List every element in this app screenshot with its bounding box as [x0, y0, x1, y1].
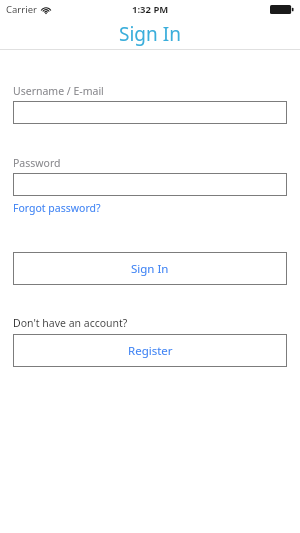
staticText: 1:32 PM — [132, 3, 169, 16]
staticText: Don't have an account? — [13, 316, 128, 330]
button[interactable]: Forgot password? — [13, 201, 101, 215]
staticText: Sign In — [131, 261, 169, 277]
button[interactable]: Sign In — [13, 252, 287, 285]
button[interactable] — [13, 101, 287, 124]
button[interactable]: Register — [13, 334, 287, 367]
staticText: Password — [13, 156, 61, 170]
button[interactable] — [13, 173, 287, 196]
staticText: Forgot password? — [13, 201, 101, 215]
staticText: Username / E-mail — [13, 84, 104, 98]
staticText: Register — [128, 343, 173, 359]
staticText: Sign In — [119, 21, 181, 47]
staticText: Carrier — [6, 3, 37, 16]
